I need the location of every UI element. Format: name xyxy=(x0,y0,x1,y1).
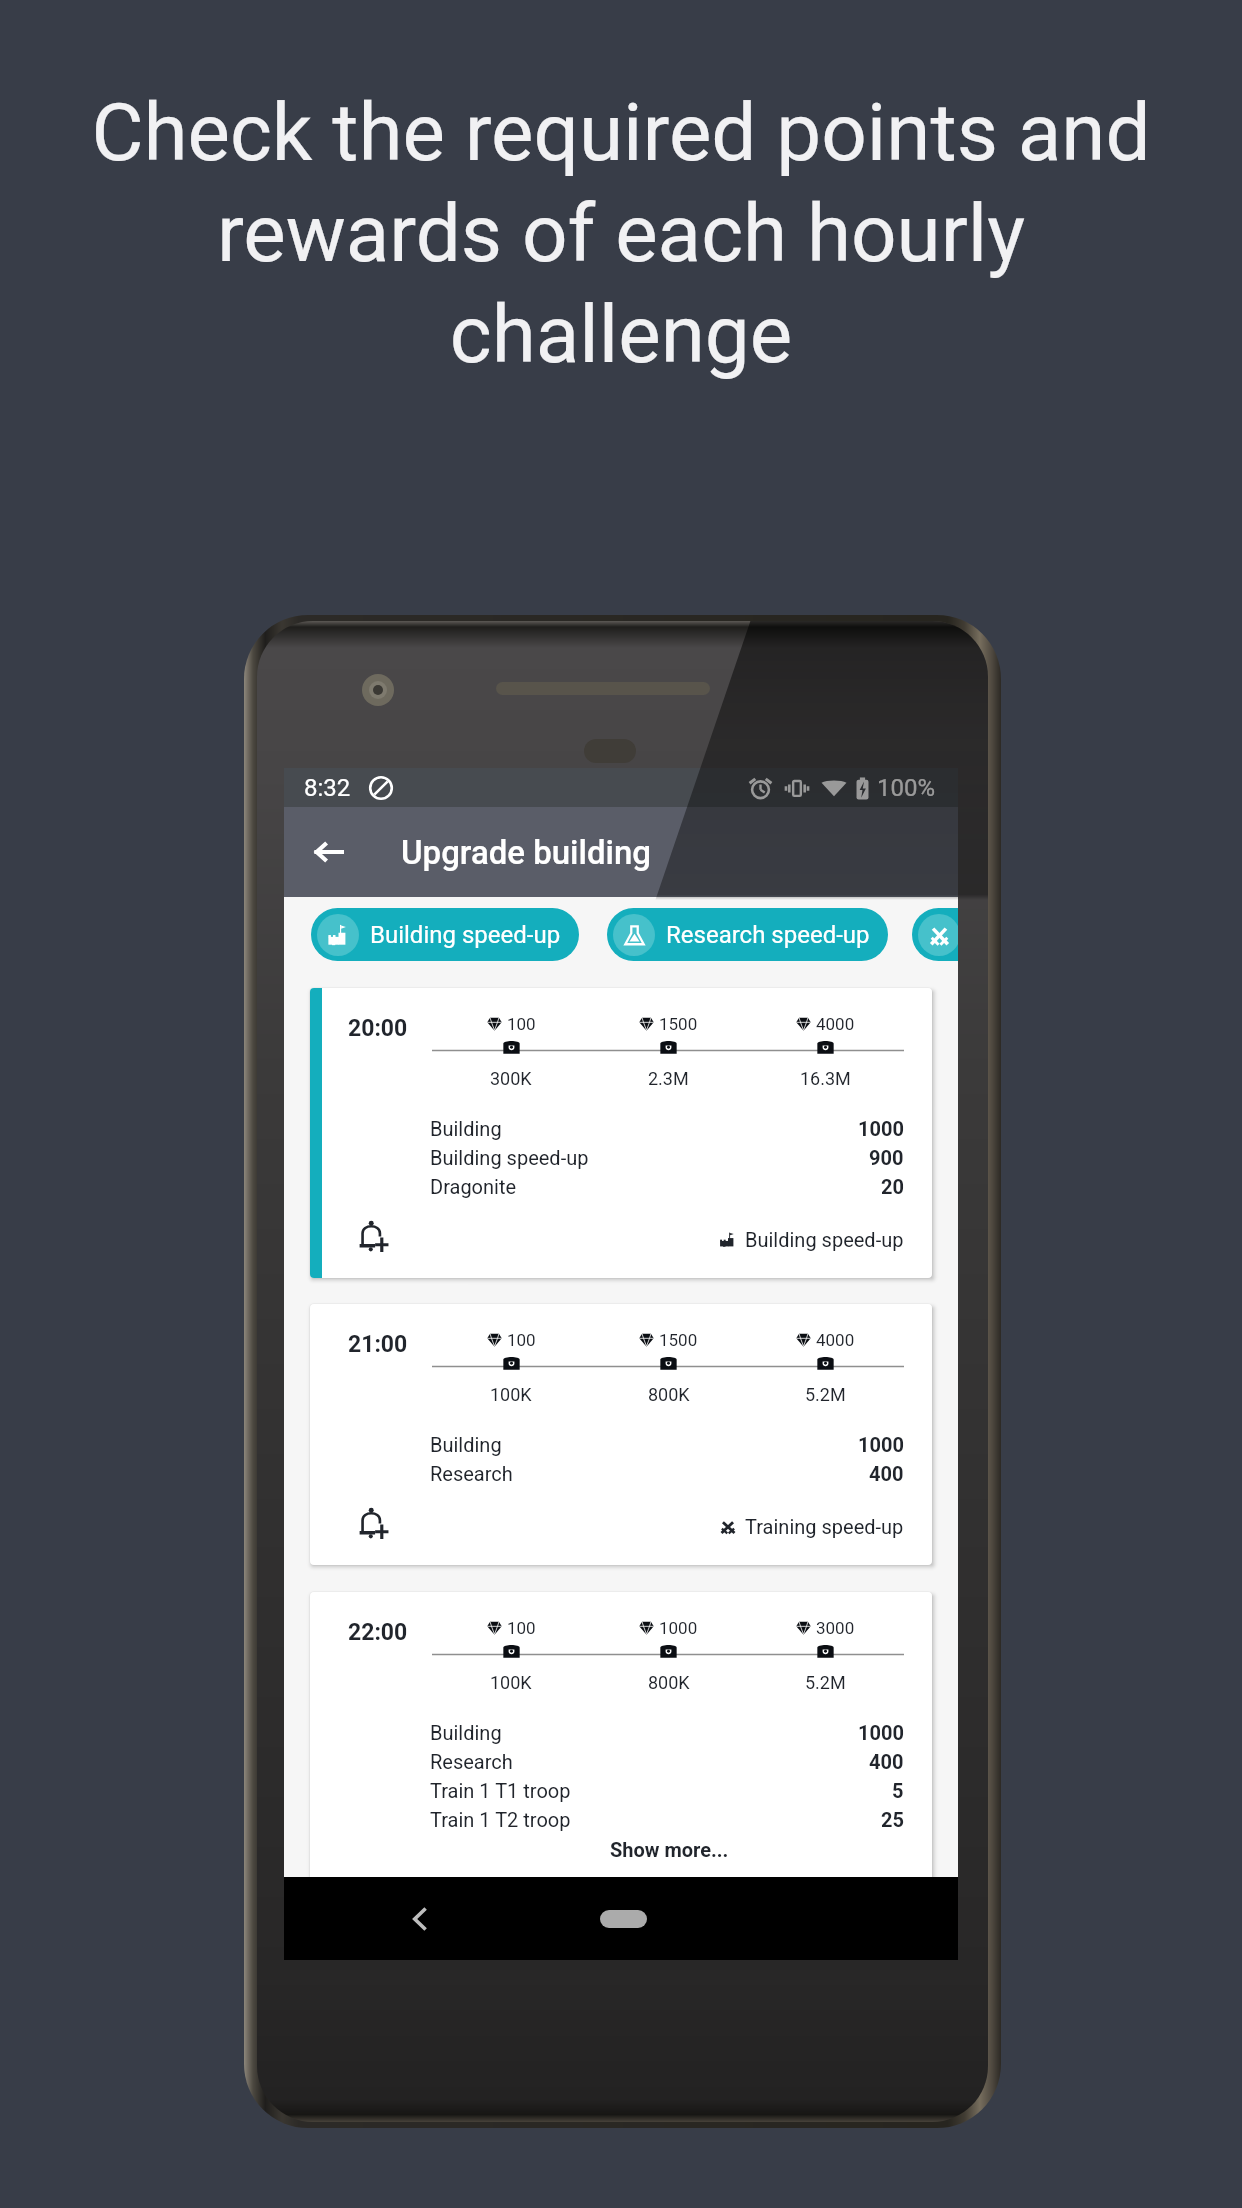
button[interactable]: Building speed-up xyxy=(311,908,579,961)
button[interactable]: Training speed-up xyxy=(912,908,958,961)
button[interactable]: Add reminder xyxy=(354,1503,394,1543)
staticText: 4000 xyxy=(816,1014,855,1034)
button[interactable]: Research speed-up xyxy=(607,908,888,961)
staticText: 100% xyxy=(877,774,936,802)
staticText: 5 xyxy=(892,1779,904,1802)
staticText: 22:00 xyxy=(348,1619,408,1646)
staticText: Check the required points and rewards of… xyxy=(91,86,1151,381)
staticText: 1500 xyxy=(659,1330,698,1350)
staticText: Dragonite xyxy=(430,1175,517,1198)
staticText: 1000 xyxy=(858,1433,904,1456)
staticText: Building xyxy=(430,1433,502,1456)
staticText: Research xyxy=(430,1750,513,1773)
staticText: 4000 xyxy=(816,1330,855,1350)
staticText: Research speed-up xyxy=(666,921,870,949)
staticText: 1000 xyxy=(659,1618,698,1638)
staticText: 2.3M xyxy=(648,1068,689,1089)
staticText: 100K xyxy=(490,1384,532,1405)
staticText: 1000 xyxy=(858,1721,904,1744)
button[interactable]: Back xyxy=(298,821,360,883)
staticText: 20:00 xyxy=(348,1015,408,1042)
button[interactable]: Home xyxy=(600,1910,647,1928)
staticText: Train 1 T2 troop xyxy=(430,1808,571,1831)
staticText: 1500 xyxy=(659,1014,698,1034)
staticText: 800K xyxy=(648,1384,690,1405)
staticText: Building speed-up xyxy=(370,921,561,949)
staticText: Building xyxy=(430,1117,502,1140)
staticText: 20 xyxy=(881,1175,904,1198)
staticText: 5.2M xyxy=(805,1672,846,1693)
staticText: 1000 xyxy=(858,1117,904,1140)
button[interactable]: Add reminder xyxy=(354,1216,394,1256)
staticText: Building xyxy=(430,1721,502,1744)
staticText: 3000 xyxy=(816,1618,855,1638)
staticText: Upgrade building xyxy=(401,833,651,872)
staticText: 21:00 xyxy=(348,1331,408,1358)
staticText: Train 1 T1 troop xyxy=(430,1779,571,1802)
staticText: 400 xyxy=(869,1462,904,1485)
staticText: 25 xyxy=(881,1808,904,1831)
staticText: Training speed-up xyxy=(745,1515,904,1538)
staticText: 900 xyxy=(869,1146,904,1169)
button[interactable]: Back xyxy=(400,1899,440,1939)
staticText: 100 xyxy=(507,1014,536,1034)
staticText: 8:32 xyxy=(304,774,351,802)
staticText: 5.2M xyxy=(805,1384,846,1405)
staticText: 100 xyxy=(507,1618,536,1638)
staticText: 300K xyxy=(490,1068,532,1089)
staticText: 100 xyxy=(507,1330,536,1350)
staticText: 16.3M xyxy=(800,1068,851,1089)
staticText: Research xyxy=(430,1462,513,1485)
staticText: 100K xyxy=(490,1672,532,1693)
staticText: 400 xyxy=(869,1750,904,1773)
button[interactable]: Show more... xyxy=(610,1838,729,1861)
staticText: Building speed-up xyxy=(745,1228,904,1251)
staticText: 800K xyxy=(648,1672,690,1693)
staticText: Building speed-up xyxy=(430,1146,589,1169)
